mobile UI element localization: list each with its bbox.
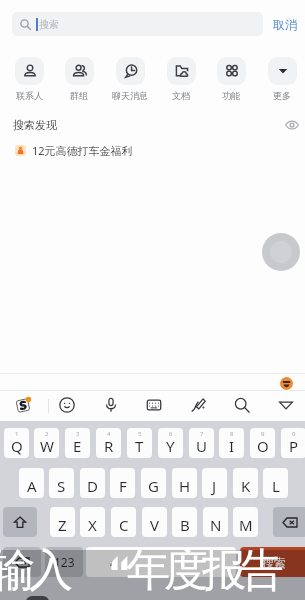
staticText: V — [150, 515, 160, 535]
staticText: 0 — [292, 430, 296, 438]
staticText: 5 — [138, 430, 142, 438]
staticText: D — [87, 476, 98, 496]
button[interactable]: 联系人 — [7, 55, 51, 101]
button[interactable]: 12元高德打车金福利 — [0, 141, 305, 159]
staticText: 4 — [107, 430, 111, 438]
button[interactable]: Hide discovery — [284, 117, 300, 133]
button[interactable]: shift — [3, 507, 37, 537]
button[interactable]: Search — [226, 389, 258, 421]
button[interactable]: S — [49, 468, 74, 498]
button[interactable]: 更多 — [260, 55, 304, 101]
staticText: 联系人 — [16, 90, 43, 101]
button[interactable]: Handwriting — [182, 389, 214, 421]
button[interactable]: 8 — [219, 428, 244, 458]
button[interactable]: 0 — [281, 428, 305, 458]
button[interactable]: X — [80, 507, 105, 537]
staticText: 1 — [15, 430, 19, 438]
staticText: 2 — [45, 430, 49, 438]
staticText: 取消 — [273, 17, 297, 32]
staticText: E — [73, 436, 82, 456]
staticText: S — [57, 476, 66, 496]
button[interactable]: Z — [50, 507, 75, 537]
staticText: L — [272, 476, 280, 496]
button[interactable]: K — [233, 468, 258, 498]
button[interactable]: delete — [273, 507, 305, 537]
staticText: F — [119, 476, 127, 496]
button[interactable]: symbols — [3, 547, 41, 577]
staticText: H — [179, 476, 191, 496]
staticText: 搜索 — [39, 18, 59, 31]
button[interactable]: 7 — [189, 428, 214, 458]
button[interactable]: H — [172, 468, 197, 498]
button[interactable]: C — [111, 507, 136, 537]
staticText: 年度报告 — [129, 543, 281, 598]
staticText: Y — [166, 436, 175, 456]
staticText: 7 — [200, 430, 204, 438]
staticText: 群组 — [70, 90, 88, 101]
button[interactable]: Hide keyboard — [270, 389, 302, 421]
staticText: 功能 — [222, 90, 240, 101]
staticText: O — [257, 436, 269, 456]
button[interactable]: 取消 — [271, 15, 299, 34]
staticText: 输入 — [0, 543, 70, 598]
button[interactable]: 2 — [34, 428, 59, 458]
staticText: 3 — [76, 430, 80, 438]
button[interactable]: D — [80, 468, 105, 498]
staticText: 9 — [261, 430, 265, 438]
button[interactable]: Voice input — [95, 389, 127, 421]
button[interactable]: Emoji — [51, 389, 83, 421]
button[interactable]: 群组 — [57, 55, 101, 101]
button[interactable]: 搜索 — [12, 12, 263, 36]
staticText: X — [88, 515, 97, 535]
staticText: K — [241, 476, 251, 496]
button[interactable]: 聊天消息 — [108, 55, 152, 101]
staticText: G — [148, 476, 159, 496]
button[interactable]: 3 — [65, 428, 90, 458]
staticText: A — [27, 476, 37, 496]
button[interactable]: 文档 — [159, 55, 203, 101]
staticText: N — [210, 515, 222, 535]
staticText: Z — [58, 515, 67, 535]
button[interactable]: Input method — [7, 389, 39, 421]
button[interactable]: 123 — [45, 547, 83, 577]
staticText: 12元高德打车金福利 — [32, 143, 133, 158]
button[interactable]: 1 — [4, 428, 29, 458]
button[interactable]: 5 — [127, 428, 152, 458]
staticText: 更多 — [273, 90, 291, 101]
staticText: T — [135, 436, 144, 456]
button[interactable]: “ — [86, 547, 236, 577]
staticText: B — [180, 515, 190, 535]
staticText: W — [40, 436, 54, 456]
staticText: 聊天消息 — [112, 90, 148, 101]
button[interactable]: 搜索 — [240, 547, 305, 577]
button[interactable]: G — [141, 468, 166, 498]
staticText: C — [119, 515, 129, 535]
button[interactable]: 6 — [158, 428, 183, 458]
button[interactable]: Sticker suggestion — [279, 376, 294, 391]
staticText: R — [104, 436, 114, 456]
button[interactable]: Keyboard — [138, 389, 170, 421]
button[interactable]: 功能 — [209, 55, 253, 101]
staticText: 123 — [54, 554, 75, 570]
button[interactable]: 4 — [96, 428, 121, 458]
staticText: “ — [110, 554, 118, 577]
button[interactable]: A — [19, 468, 44, 498]
staticText: 搜索 — [262, 555, 286, 570]
staticText: M — [239, 515, 253, 535]
staticText: J — [212, 476, 217, 496]
button[interactable]: M — [233, 507, 258, 537]
button[interactable]: N — [203, 507, 228, 537]
staticText: 搜索发现 — [13, 118, 57, 132]
staticText: I — [229, 436, 235, 456]
button[interactable]: V — [142, 507, 167, 537]
staticText: 8 — [230, 430, 234, 438]
button[interactable]: Floating assistant — [262, 233, 300, 271]
button[interactable]: J — [202, 468, 227, 498]
button[interactable]: L — [263, 468, 288, 498]
button[interactable]: 9 — [250, 428, 275, 458]
staticText: P — [289, 436, 299, 456]
button[interactable]: F — [110, 468, 135, 498]
button[interactable]: B — [172, 507, 197, 537]
staticText: 6 — [169, 430, 173, 438]
staticText: U — [196, 436, 207, 456]
